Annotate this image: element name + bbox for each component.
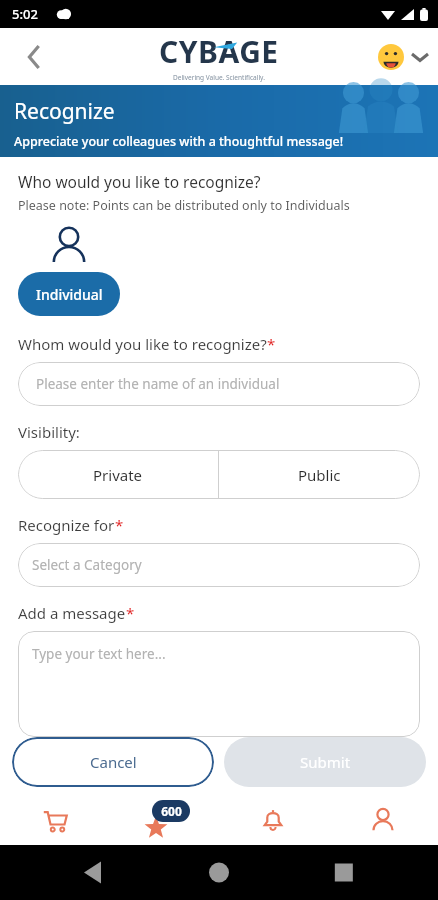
staticText: Private bbox=[93, 465, 143, 485]
staticText: Whom would you like to recognize? bbox=[18, 334, 267, 354]
button[interactable]: Back bbox=[14, 37, 54, 77]
button[interactable]: Notifications bbox=[218, 795, 328, 845]
staticText: Type your text here... bbox=[32, 645, 166, 663]
staticText: Individual bbox=[36, 285, 103, 304]
staticText: Visibility: bbox=[18, 422, 80, 442]
staticText: Please enter the name of an individual bbox=[36, 375, 280, 393]
staticText: 5:02 bbox=[12, 5, 38, 23]
button[interactable]: Private bbox=[18, 450, 218, 499]
button[interactable]: Submit bbox=[224, 737, 426, 787]
button[interactable]: Rewards 600 points bbox=[109, 795, 218, 845]
button[interactable]: Profile menu bbox=[378, 44, 428, 70]
button[interactable]: Cart bbox=[0, 795, 109, 845]
staticText: Delivering Value. Scientifically. bbox=[173, 73, 265, 82]
staticText: * bbox=[267, 334, 276, 354]
staticText: * bbox=[115, 515, 124, 535]
staticText: Add a message bbox=[18, 603, 126, 623]
staticText: Recognize for bbox=[18, 515, 115, 535]
staticText: Cancel bbox=[90, 752, 137, 772]
staticText: Public bbox=[298, 465, 341, 485]
staticText: Who would you like to recognize? bbox=[18, 171, 261, 192]
staticText: 600 bbox=[161, 803, 182, 819]
button[interactable]: Profile bbox=[328, 795, 438, 845]
button[interactable]: Public bbox=[219, 450, 420, 499]
staticText: Recognize bbox=[14, 97, 115, 126]
staticText: Appreciate your colleagues with a though… bbox=[14, 133, 344, 150]
staticText: * bbox=[126, 603, 135, 623]
staticText: Select a Category bbox=[32, 556, 142, 574]
button[interactable]: Individual bbox=[18, 272, 120, 316]
staticText: Submit bbox=[300, 752, 351, 772]
staticText: CYBAGE bbox=[159, 31, 279, 72]
button[interactable]: Please enter the name of an individual bbox=[18, 362, 420, 406]
button[interactable]: Cancel bbox=[12, 737, 214, 787]
staticText: Please note: Points can be distributed o… bbox=[18, 197, 350, 214]
button[interactable]: Select a Category bbox=[18, 543, 420, 587]
button[interactable]: Type your text here... bbox=[18, 631, 420, 737]
